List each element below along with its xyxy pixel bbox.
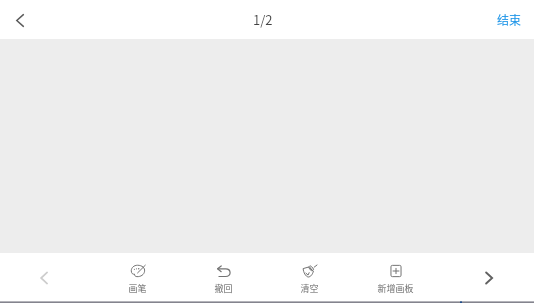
button[interactable]: Next board: [471, 260, 507, 296]
staticText: 撤回: [214, 282, 233, 295]
staticText: 清空: [300, 282, 319, 295]
button[interactable]: Brush: [109, 253, 165, 303]
button[interactable]: Previous board: [26, 260, 62, 296]
button[interactable]: Undo: [195, 253, 251, 303]
staticText: 1/2: [253, 10, 273, 29]
button[interactable]: Back: [2, 2, 38, 38]
staticText: 新增画板: [377, 282, 414, 295]
button[interactable]: Add board: [367, 253, 423, 303]
button[interactable]: Clear: [281, 253, 337, 303]
button[interactable]: 结束: [493, 5, 526, 34]
staticText: 结束: [497, 11, 522, 28]
staticText: 画笔: [128, 282, 147, 295]
